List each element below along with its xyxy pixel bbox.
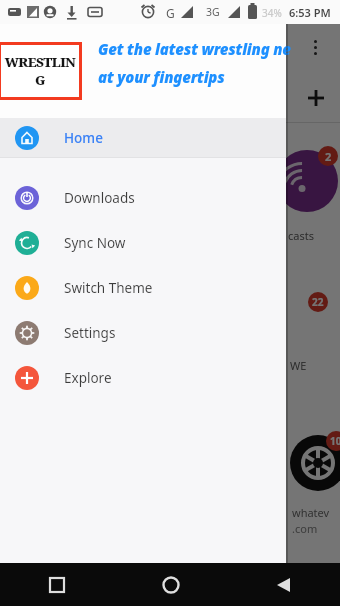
staticText: 10 xyxy=(330,434,340,448)
staticText: Home xyxy=(64,129,103,147)
staticText: Switch Theme xyxy=(64,279,153,297)
staticText: whatev xyxy=(292,505,330,520)
staticText: WE xyxy=(290,358,307,373)
button[interactable]: Downloads xyxy=(0,175,286,220)
staticText: 2 xyxy=(325,149,332,164)
button[interactable]: Switch Theme xyxy=(0,265,286,310)
staticText: 3G xyxy=(206,5,220,19)
staticText: at your fingertips xyxy=(98,67,225,87)
staticText: G xyxy=(166,5,175,21)
button[interactable]: Sync Now xyxy=(0,220,286,265)
button[interactable]: Recent apps xyxy=(0,563,114,606)
button[interactable]: Explore xyxy=(0,355,286,400)
staticText: Explore xyxy=(64,369,112,387)
staticText: .com xyxy=(292,521,318,536)
staticText: 6:53 PM xyxy=(289,5,331,20)
staticText: Sync Now xyxy=(64,234,126,252)
staticText: 34% xyxy=(262,6,282,20)
button[interactable]: Add xyxy=(303,85,329,111)
button[interactable]: Back xyxy=(227,563,340,606)
button[interactable]: Settings xyxy=(0,310,286,355)
staticText: WRESTLING xyxy=(1,53,79,89)
button[interactable]: Home xyxy=(0,118,286,157)
staticText: Downloads xyxy=(64,189,135,207)
button[interactable]: Home xyxy=(114,563,227,606)
staticText: casts xyxy=(288,228,314,243)
staticText: Get the latest wrestling ne xyxy=(98,39,291,59)
button[interactable]: More options xyxy=(314,40,317,58)
staticText: Settings xyxy=(64,324,116,342)
staticText: 22 xyxy=(312,295,324,309)
